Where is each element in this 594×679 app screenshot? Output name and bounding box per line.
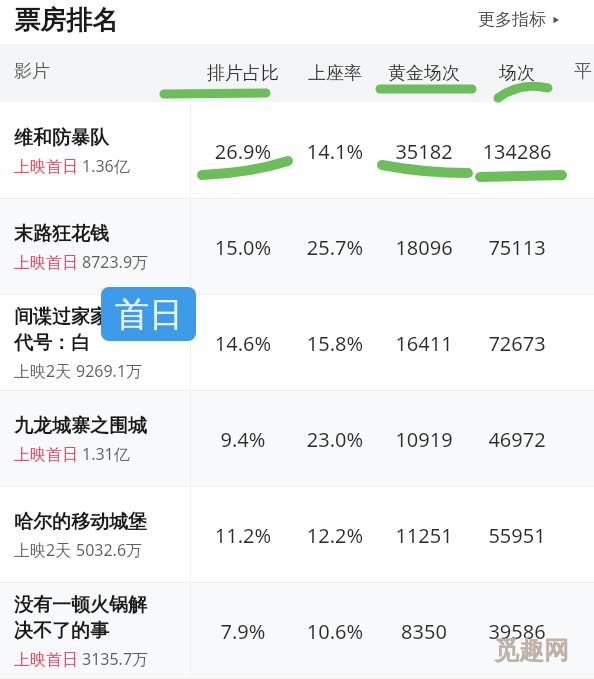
- staticText: 代号：白: [14, 331, 90, 355]
- staticText: 11.2%: [188, 522, 298, 549]
- staticText: 10919: [369, 426, 479, 453]
- staticText: 5032.6万: [76, 539, 143, 561]
- staticText: 决不了的事: [14, 619, 109, 643]
- button[interactable]: 没有一顿火锅解: [0, 583, 594, 679]
- staticText: 7.9%: [188, 618, 298, 645]
- staticText: 10.6%: [280, 618, 390, 645]
- staticText: 9.4%: [188, 426, 298, 453]
- staticText: 末路狂花钱: [14, 222, 109, 246]
- staticText: 没有一顿火锅解: [14, 593, 147, 617]
- staticText: 维和防暴队: [14, 126, 109, 150]
- button[interactable]: 更多指标: [478, 9, 561, 30]
- staticText: 46972: [462, 426, 572, 453]
- staticText: 8723.9万: [82, 251, 149, 273]
- staticText: 3135.7万: [82, 648, 149, 670]
- staticText: 9269.1万: [76, 360, 143, 382]
- button[interactable]: 末路狂花钱: [0, 199, 594, 295]
- staticText: 间谍过家家: [14, 305, 109, 329]
- staticText: 12.2%: [280, 522, 390, 549]
- staticText: 平: [574, 60, 592, 83]
- staticText: 1.31亿: [82, 443, 130, 465]
- staticText: 场次: [462, 62, 572, 85]
- staticText: 134286: [462, 138, 572, 165]
- staticText: 72673: [462, 330, 572, 357]
- staticText: 14.1%: [280, 138, 390, 165]
- staticText: 影片: [14, 60, 50, 83]
- staticText: 14.6%: [188, 330, 298, 357]
- staticText: 18096: [369, 234, 479, 261]
- staticText: 觅趣网: [494, 635, 569, 666]
- staticText: 上映首日: [14, 650, 78, 670]
- staticText: 1.36亿: [82, 155, 130, 177]
- staticText: 39586: [462, 618, 572, 645]
- staticText: 25.7%: [280, 234, 390, 261]
- staticText: 26.9%: [188, 138, 298, 165]
- staticText: 首日: [115, 293, 183, 336]
- staticText: 票房排名: [14, 4, 118, 37]
- staticText: 哈尔的移动城堡: [14, 510, 147, 534]
- staticText: 15.0%: [188, 234, 298, 261]
- staticText: 九龙城寨之围城: [14, 414, 147, 438]
- staticText: 8350: [369, 618, 479, 645]
- staticText: 上映2天: [14, 360, 72, 382]
- staticText: 35182: [369, 138, 479, 165]
- staticText: 11251: [369, 522, 479, 549]
- staticText: 上映首日: [14, 253, 78, 273]
- button[interactable]: 九龙城寨之围城: [0, 391, 594, 487]
- staticText: 上座率: [280, 62, 390, 85]
- staticText: 16411: [369, 330, 479, 357]
- staticText: 排片占比: [188, 62, 298, 85]
- staticText: 上映2天: [14, 539, 72, 561]
- staticText: 75113: [462, 234, 572, 261]
- staticText: 55951: [462, 522, 572, 549]
- staticText: 上映首日: [14, 157, 78, 177]
- staticText: 黄金场次: [369, 62, 479, 85]
- button[interactable]: 哈尔的移动城堡: [0, 487, 594, 583]
- other: 首日: [101, 287, 196, 341]
- staticText: 15.8%: [280, 330, 390, 357]
- button[interactable]: 维和防暴队: [0, 103, 594, 199]
- staticText: 上映首日: [14, 445, 78, 465]
- button[interactable]: 间谍过家家: [0, 295, 594, 391]
- staticText: 23.0%: [280, 426, 390, 453]
- staticText: 更多指标: [478, 9, 546, 30]
